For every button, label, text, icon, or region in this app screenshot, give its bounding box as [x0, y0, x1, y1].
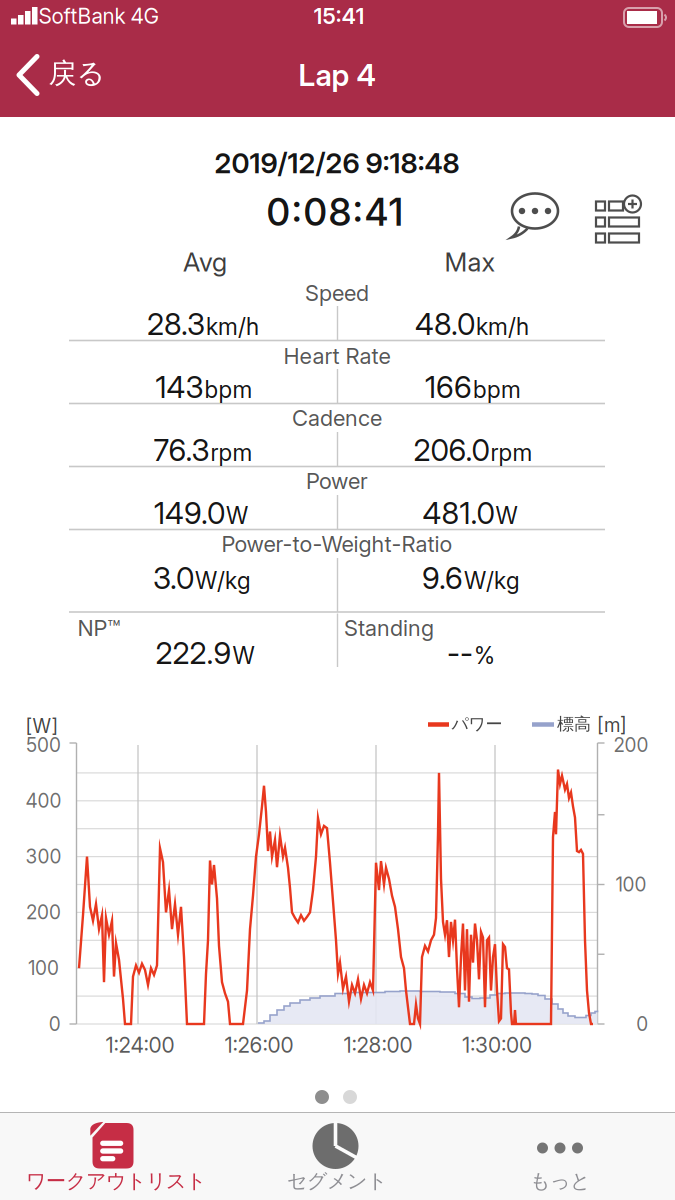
staticText: %	[474, 642, 495, 669]
staticText: 28.3	[147, 306, 205, 342]
staticText: 200	[26, 901, 61, 924]
staticText: 300	[25, 845, 61, 868]
staticText: 戻る	[48, 56, 105, 91]
staticText: W	[232, 642, 254, 669]
staticText: 9.6	[422, 560, 463, 596]
staticText: 481.0	[422, 495, 494, 531]
staticText: 3.0	[153, 560, 194, 596]
staticText: Power-to-Weight-Ratio	[221, 531, 452, 557]
staticText: W	[495, 502, 517, 529]
staticText: Heart Rate	[283, 343, 390, 369]
staticText: セグメント	[287, 1169, 387, 1193]
staticText: W	[226, 502, 248, 529]
staticText: 200	[613, 734, 648, 756]
staticText: 1:24:00	[105, 1033, 174, 1057]
staticText: 100	[615, 873, 646, 896]
staticText: 500	[26, 734, 61, 756]
staticText: パワー	[451, 714, 502, 734]
staticText: W/kg	[464, 567, 520, 594]
staticText: 15:41	[313, 3, 364, 29]
staticText: [W]	[25, 715, 58, 737]
staticText: Speed	[305, 280, 369, 306]
staticText: W/kg	[195, 567, 251, 594]
staticText: 0	[636, 1013, 648, 1035]
staticText: 1:26:00	[224, 1033, 293, 1057]
staticText: 0	[49, 1013, 61, 1035]
staticText: rpm	[210, 439, 252, 466]
staticText: km/h	[206, 313, 259, 340]
staticText: 76.3	[153, 432, 209, 468]
staticText: ワークアウトリスト	[26, 1169, 206, 1193]
staticText: Standing	[344, 615, 434, 641]
staticText: bpm	[204, 376, 252, 403]
staticText: 100	[28, 957, 59, 979]
staticText: Max	[444, 247, 495, 277]
staticText: Lap 4	[298, 57, 375, 93]
staticText: --	[447, 635, 473, 671]
staticText: NP™	[77, 615, 120, 641]
staticText: Power	[306, 468, 368, 494]
staticText: 206.0	[413, 432, 489, 468]
staticText: [m]	[597, 714, 627, 736]
staticText: 166	[425, 369, 472, 405]
staticText: km/h	[476, 313, 529, 340]
staticText: もっと	[530, 1169, 590, 1193]
staticText: 1:28:00	[343, 1033, 412, 1057]
staticText: 4G	[130, 4, 159, 28]
staticText: bpm	[473, 376, 521, 403]
staticText: 48.0	[415, 306, 475, 342]
staticText: 1:30:00	[462, 1033, 532, 1057]
staticText: 222.9	[155, 635, 231, 671]
staticText: 143	[155, 369, 203, 405]
staticText: SoftBank	[38, 4, 125, 28]
staticText: 400	[25, 790, 61, 812]
staticText: 149.0	[154, 495, 225, 531]
staticText: 標高	[557, 714, 591, 734]
staticText: 2019/12/26 9:18:48	[214, 146, 459, 179]
staticText: Avg	[183, 247, 227, 277]
staticText: 0:08:41	[266, 190, 404, 234]
staticText: rpm	[490, 439, 532, 466]
staticText: Cadence	[292, 405, 382, 431]
